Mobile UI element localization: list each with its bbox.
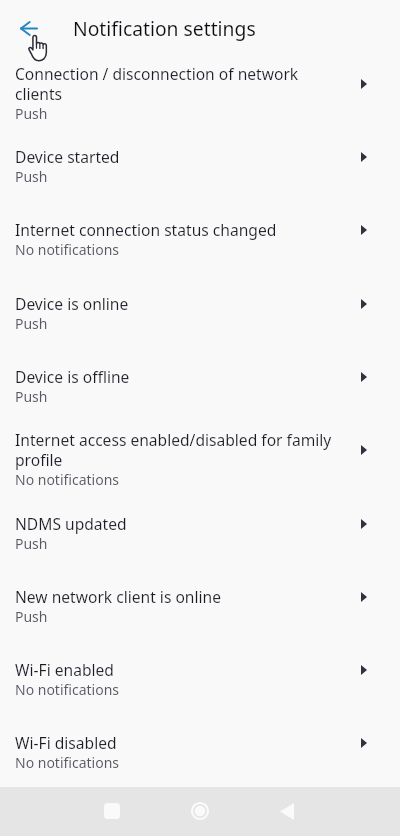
button[interactable]: Back <box>8 8 48 48</box>
staticText: No notifications <box>15 240 120 259</box>
button[interactable]: Home <box>178 789 222 833</box>
button[interactable]: Device is online <box>0 276 400 349</box>
staticText: Push <box>15 387 48 406</box>
staticText: Device is online <box>15 293 335 314</box>
staticText: No notifications <box>15 753 120 772</box>
staticText: Push <box>15 104 48 123</box>
staticText: No notifications <box>15 680 120 699</box>
staticText: No notifications <box>15 470 120 489</box>
button[interactable]: Device started <box>0 129 400 202</box>
staticText: Internet connection status changed <box>15 219 335 240</box>
staticText: Connection / disconnection of network cl… <box>15 63 335 104</box>
button[interactable]: Recents <box>90 789 134 833</box>
staticText: New network client is online <box>15 586 335 607</box>
staticText: Internet access enabled/disabled for fam… <box>15 429 335 470</box>
staticText: Device is offline <box>15 366 335 387</box>
button[interactable]: Wi-Fi enabled <box>0 642 400 715</box>
staticText: Push <box>15 167 48 186</box>
staticText: Push <box>15 607 48 626</box>
button[interactable]: Connection / disconnection of network cl… <box>0 56 400 129</box>
staticText: Wi-Fi disabled <box>15 732 335 753</box>
button[interactable]: Back <box>265 789 309 833</box>
staticText: Push <box>15 534 48 553</box>
button[interactable]: Device is offline <box>0 349 400 422</box>
button[interactable]: Internet connection status changed <box>0 202 400 276</box>
staticText: Wi-Fi enabled <box>15 659 335 680</box>
staticText: Notification settings <box>73 15 256 41</box>
button[interactable]: NDMS updated <box>0 496 400 569</box>
staticText: NDMS updated <box>15 513 335 534</box>
staticText: Push <box>15 314 48 333</box>
staticText: Device started <box>15 146 335 167</box>
button[interactable]: New network client is online <box>0 569 400 642</box>
button[interactable]: Wi-Fi disabled <box>0 715 400 787</box>
button[interactable]: Internet access enabled/disabled for fam… <box>0 422 400 496</box>
